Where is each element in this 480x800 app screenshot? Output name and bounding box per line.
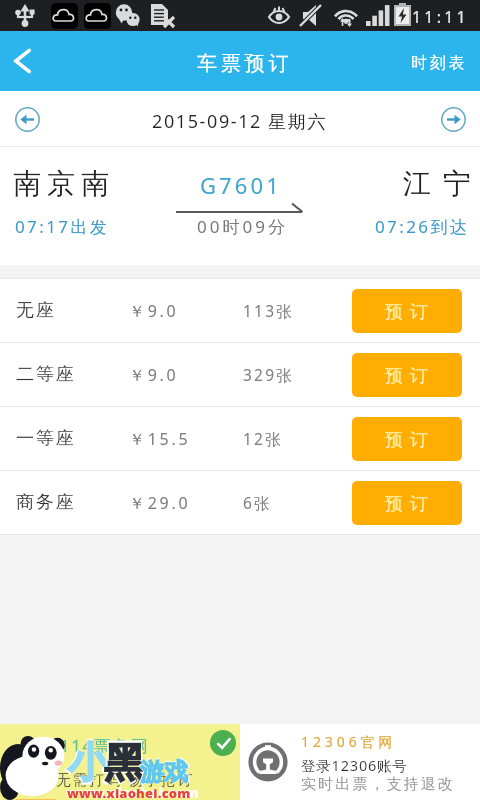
staticText: 00时09分: [197, 215, 288, 238]
button[interactable]: 预 订: [352, 289, 462, 333]
staticText: ￥15.5: [129, 428, 191, 450]
button[interactable]: 无座: [0, 279, 480, 342]
button[interactable]: 12306官网: [240, 724, 480, 800]
button[interactable]: 时刻表: [410, 31, 467, 91]
staticText: 6张: [243, 492, 272, 513]
staticText: 一等座: [16, 427, 76, 450]
staticText: 2015-09-12 星期六: [152, 109, 328, 134]
staticText: www.xiaohei.com: [67, 784, 191, 800]
staticText: 车票预订: [197, 51, 293, 76]
staticText: 07:17出发: [15, 215, 110, 238]
staticText: 实时出票，支持退改: [301, 775, 455, 794]
staticText: 预 订: [385, 427, 429, 452]
staticText: 12张: [243, 428, 283, 449]
staticText: 游戏: [140, 757, 188, 787]
button[interactable]: 预 订: [352, 417, 462, 461]
staticText: 11:11: [412, 6, 469, 28]
staticText: 小: [68, 738, 109, 790]
button[interactable]: 二等座: [0, 343, 480, 406]
staticText: 南京南: [10, 166, 112, 201]
staticText: ￥29.0: [129, 492, 191, 514]
staticText: 二等座: [16, 363, 76, 386]
staticText: 江宁: [397, 166, 477, 201]
staticText: 114票务网: [60, 734, 150, 757]
button[interactable]: 商务座: [0, 471, 480, 534]
staticText: 游戏: [139, 756, 189, 787]
staticText: 黑: [104, 738, 145, 790]
button[interactable]: 一等座: [0, 407, 480, 470]
button[interactable]: 预 订: [352, 353, 462, 397]
staticText: 小: [66, 736, 110, 791]
staticText: 329张: [243, 364, 294, 385]
button[interactable]: Advertisement: [0, 724, 240, 800]
staticText: 预 订: [385, 299, 429, 324]
staticText: 预 订: [385, 491, 429, 516]
button[interactable]: Next day: [441, 107, 466, 132]
staticText: 黑: [102, 736, 146, 791]
staticText: 时刻表: [411, 53, 468, 73]
staticText: 商务座: [16, 491, 76, 514]
staticText: 07:26到达: [375, 215, 470, 238]
staticText: 预 订: [385, 363, 429, 388]
staticText: 无需打码 畅享抢订: [56, 769, 194, 789]
staticText: 登录12306账号: [301, 755, 408, 775]
button[interactable]: Back: [0, 31, 54, 91]
staticText: ￥9.0: [129, 300, 179, 322]
button[interactable]: 预 订: [352, 481, 462, 525]
staticText: G7601: [200, 170, 282, 200]
staticText: www.xiaohei.com: [66, 783, 199, 800]
staticText: ￥9.0: [129, 364, 179, 386]
button[interactable]: Previous day: [15, 107, 40, 132]
staticText: 12306官网: [301, 732, 397, 751]
staticText: 无座: [16, 299, 56, 322]
staticText: 113张: [243, 300, 294, 321]
